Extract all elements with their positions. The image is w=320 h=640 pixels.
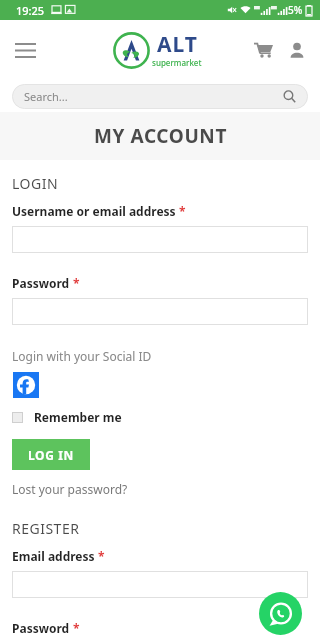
staticText: LOGIN	[12, 174, 59, 193]
staticText: 5%	[288, 3, 303, 17]
button[interactable]: Menu	[8, 33, 42, 67]
staticText: *	[73, 275, 80, 291]
button[interactable]	[12, 298, 308, 325]
staticText: Email address	[12, 548, 95, 564]
staticText: Login with your Social ID	[12, 348, 152, 364]
button[interactable]: ALT Supermarket home	[113, 30, 202, 70]
staticText: Password	[12, 275, 70, 291]
staticText: REGISTER	[12, 519, 80, 538]
staticText: Remember me	[34, 409, 122, 425]
button[interactable]: Lost your password?	[12, 481, 128, 497]
button[interactable]: LOG IN	[12, 439, 90, 470]
staticText: 19:25	[16, 3, 45, 18]
button[interactable]	[12, 226, 308, 253]
staticText: Username or email address	[12, 203, 176, 219]
staticText: Search...	[24, 89, 283, 104]
button[interactable]: My account	[284, 37, 310, 63]
button[interactable]	[12, 571, 308, 598]
staticText: LOG IN	[28, 447, 74, 463]
staticText: *	[98, 548, 105, 564]
button[interactable]: Cart	[250, 37, 276, 63]
button[interactable]: Chat on WhatsApp	[259, 592, 302, 635]
button[interactable]: Remember me	[12, 409, 122, 425]
staticText: *	[179, 203, 186, 219]
staticText: *	[73, 620, 80, 636]
staticText: ALT	[157, 30, 198, 59]
staticText: MY ACCOUNT	[94, 123, 227, 149]
button[interactable]: Login with Facebook	[13, 372, 39, 398]
button[interactable]: Search...	[12, 84, 308, 109]
staticText: supermarket	[152, 57, 202, 68]
staticText: Password	[12, 620, 70, 636]
